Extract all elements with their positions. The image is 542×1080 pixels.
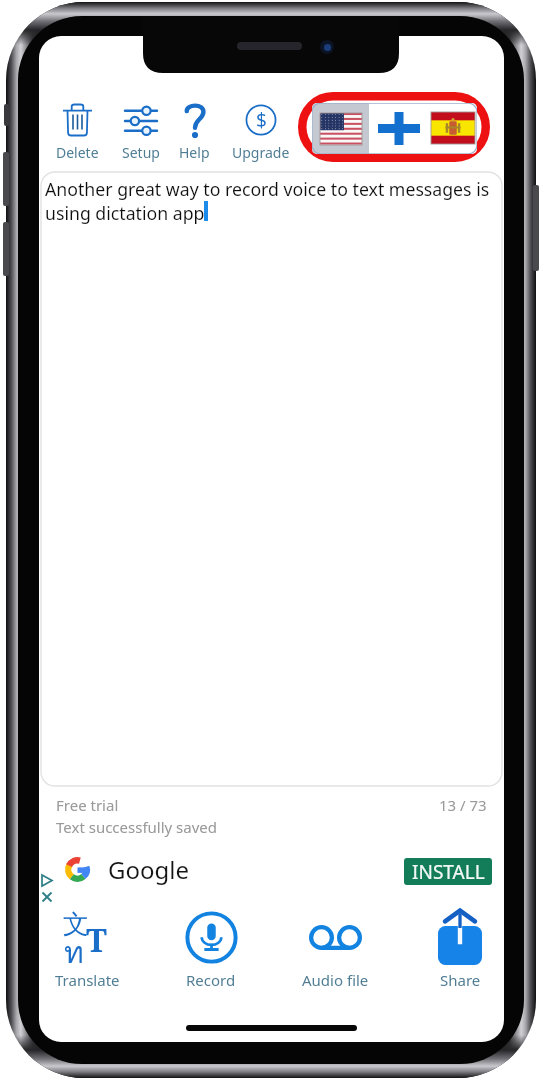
button[interactable]: Share [404, 902, 504, 998]
staticText: Google [108, 853, 189, 886]
staticText: Upgrade [232, 143, 290, 162]
button[interactable]: INSTALL [404, 858, 492, 885]
staticText: Record [186, 970, 236, 990]
staticText: $ [256, 107, 267, 133]
staticText: Text successfully saved [56, 817, 218, 837]
staticText: Share [440, 970, 481, 990]
staticText: 文 [63, 908, 89, 941]
staticText: ท [64, 929, 84, 977]
staticText: Free trial [56, 795, 119, 815]
button[interactable] [298, 92, 490, 162]
staticText: Another great way to record voice to tex… [45, 177, 496, 225]
staticText: Audio file [302, 970, 369, 990]
button[interactable]: $ [225, 100, 297, 164]
button[interactable]: Setup [105, 100, 177, 164]
staticText: INSTALL [412, 859, 485, 885]
staticText: Translate [55, 970, 120, 990]
staticText: T [86, 918, 107, 962]
button[interactable]: Delete [41, 100, 113, 164]
button[interactable]: 文 [39, 902, 143, 998]
button[interactable]: Audio file [279, 902, 391, 998]
button[interactable]: Record [155, 902, 267, 998]
button[interactable]: Help [158, 100, 230, 164]
staticText: Help [179, 143, 210, 162]
staticText: 13 / 73 [439, 795, 487, 815]
staticText: Delete [56, 143, 99, 162]
staticText: Setup [122, 143, 160, 162]
